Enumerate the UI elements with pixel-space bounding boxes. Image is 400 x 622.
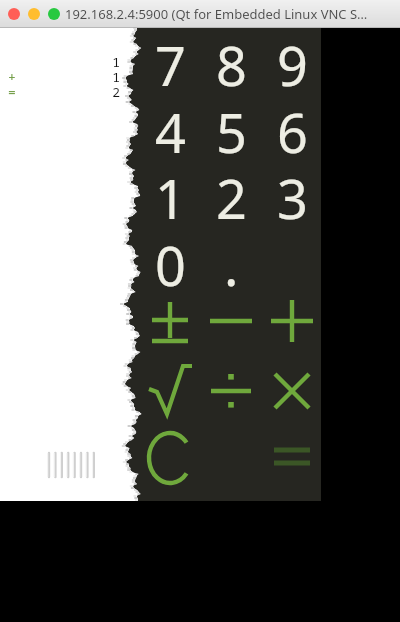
- staticText: 8: [216, 28, 247, 94]
- button[interactable]: 9: [262, 28, 322, 94]
- button[interactable]: 2: [201, 161, 261, 227]
- button[interactable]: 8: [201, 28, 261, 94]
- button[interactable]: Plus minus: [140, 292, 200, 358]
- button[interactable]: Equals: [262, 425, 322, 491]
- button[interactable]: 6: [262, 95, 322, 161]
- button[interactable]: 4: [140, 95, 200, 161]
- button[interactable]: 5: [201, 95, 261, 161]
- staticText: 1: [8, 53, 120, 68]
- staticText: 3: [277, 161, 308, 227]
- staticText: 1: [16, 68, 120, 83]
- button[interactable]: Clear: [140, 425, 200, 491]
- staticText: .: [224, 228, 239, 294]
- button[interactable]: Square root: [140, 358, 200, 424]
- button[interactable]: Close: [8, 8, 20, 20]
- staticText: 1: [155, 161, 186, 227]
- button[interactable]: Multiply: [262, 358, 322, 424]
- staticText: 5: [216, 95, 247, 161]
- button[interactable]: Plus: [262, 292, 322, 358]
- staticText: 6: [277, 95, 308, 161]
- staticText: 4: [155, 95, 186, 161]
- staticText: +: [8, 68, 16, 83]
- button[interactable]: Minimize: [28, 8, 40, 20]
- staticText: =: [8, 83, 16, 98]
- staticText: 2: [216, 161, 247, 227]
- staticText: 0: [155, 228, 186, 294]
- button[interactable]: 1: [140, 161, 200, 227]
- staticText: 9: [277, 28, 308, 94]
- button[interactable]: 3: [262, 161, 322, 227]
- button[interactable]: Minus: [201, 292, 261, 358]
- button[interactable]: .: [201, 228, 261, 294]
- button[interactable]: 7: [140, 28, 200, 94]
- button[interactable]: Zoom: [48, 8, 60, 20]
- button[interactable]: Divide: [201, 358, 261, 424]
- staticText: 7: [155, 28, 186, 94]
- button[interactable]: 0: [140, 228, 200, 294]
- staticText: 192.168.2.4:5900 (Qt for Embedded Linux …: [65, 5, 368, 23]
- staticText: 2: [16, 83, 120, 98]
